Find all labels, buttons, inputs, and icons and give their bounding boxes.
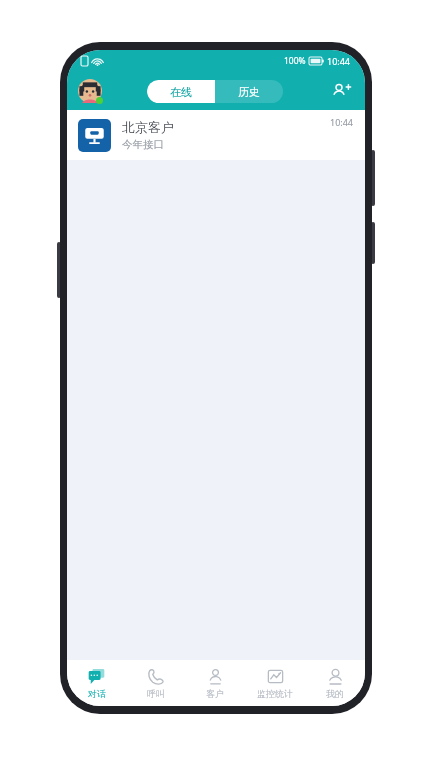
staticText: 今年接口	[122, 138, 164, 151]
button[interactable]: Add contact	[327, 77, 355, 105]
button[interactable]: 北京客户	[67, 110, 365, 160]
button[interactable]: 在线	[147, 80, 215, 103]
button[interactable]: 监控统计	[245, 660, 305, 706]
button[interactable]: 对话	[67, 660, 126, 706]
button[interactable]: Profile	[77, 78, 103, 104]
button[interactable]: 我的	[305, 660, 365, 706]
staticText: 北京客户	[122, 119, 174, 135]
staticText: 呼叫	[147, 688, 165, 699]
staticText: 100%	[284, 55, 306, 67]
staticText: 在线	[170, 85, 192, 99]
button[interactable]: 呼叫	[126, 660, 185, 706]
staticText: 历史	[238, 85, 260, 99]
staticText: 我的	[326, 688, 344, 699]
staticText: 对话	[88, 688, 106, 699]
staticText: 客户	[206, 688, 224, 699]
button[interactable]: 客户	[185, 660, 245, 706]
staticText: 10:44	[330, 116, 354, 128]
staticText: 监控统计	[257, 688, 293, 699]
button[interactable]: 历史	[215, 80, 283, 103]
staticText: 10:44	[327, 55, 351, 67]
